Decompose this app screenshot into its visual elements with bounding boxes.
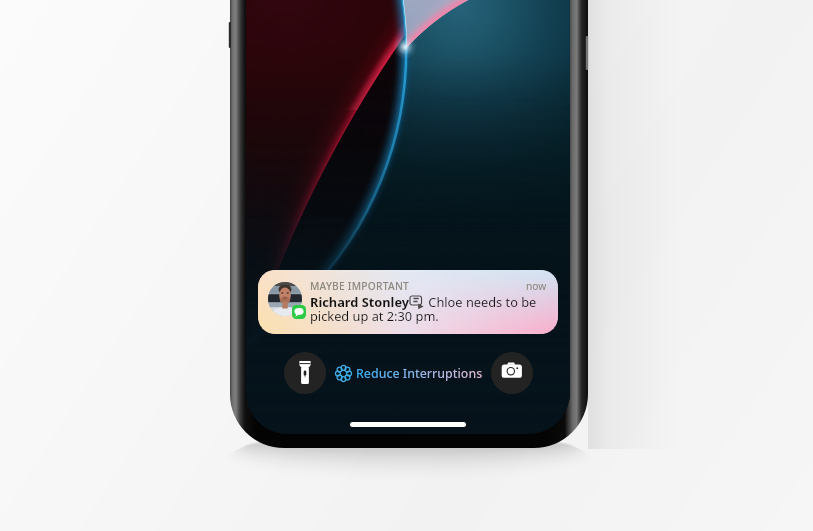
button[interactable]: Reduce Interruptions — [335, 361, 483, 385]
staticText: Richard Stonley Chloe needs to be picked… — [310, 293, 547, 325]
button[interactable]: MAYBE IMPORTANT — [258, 270, 558, 334]
button[interactable]: Camera — [491, 352, 533, 394]
staticText: now — [526, 279, 547, 293]
button[interactable]: Flashlight — [284, 352, 326, 394]
staticText: Reduce Interruptions — [356, 365, 483, 382]
staticText: MAYBE IMPORTANT — [310, 279, 410, 293]
